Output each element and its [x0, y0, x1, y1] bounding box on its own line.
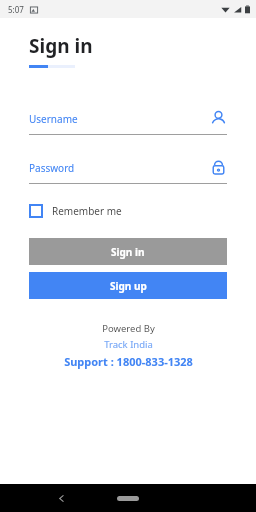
- other: Username: [210, 110, 227, 127]
- button[interactable]: Back: [57, 494, 66, 503]
- button[interactable]: Password: [29, 159, 227, 184]
- staticText: 5:07: [8, 4, 24, 15]
- staticText: Powered By: [102, 322, 155, 335]
- button[interactable]: Sign up: [29, 272, 227, 299]
- staticText: Password: [29, 161, 210, 175]
- button[interactable]: Remember me: [29, 201, 122, 221]
- staticText: Remember me: [52, 204, 122, 218]
- staticText: Sign in: [29, 33, 93, 59]
- button[interactable]: Home: [117, 496, 139, 501]
- staticText: Sign in: [111, 245, 145, 259]
- button[interactable]: Track India: [104, 338, 153, 351]
- button[interactable]: Support : 1800-833-1328: [64, 354, 193, 369]
- staticText: Username: [29, 112, 210, 126]
- staticText: Sign up: [110, 279, 147, 293]
- button[interactable]: Sign in: [29, 238, 227, 265]
- button[interactable]: Username: [29, 110, 227, 135]
- other: Password: [210, 159, 227, 176]
